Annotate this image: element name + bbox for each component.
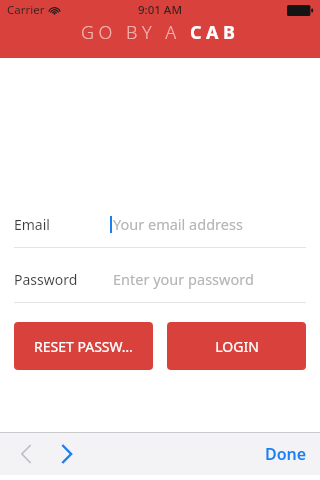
button[interactable]: Email [14,209,306,239]
button[interactable]: Previous field [6,434,46,474]
staticText: Email [14,215,50,234]
staticText: 9:01 AM [138,2,182,18]
button[interactable]: Next field [46,434,86,474]
button[interactable]: Password [14,264,306,294]
staticText: Done [265,443,307,465]
button[interactable]: LOGIN [167,322,306,370]
staticText: Password [14,270,78,289]
staticText: LOGIN [215,337,259,356]
staticText: CAB [190,20,240,45]
button[interactable]: RESET PASSW… [14,322,153,370]
staticText: Your email address [113,214,243,234]
button[interactable]: Done [260,437,312,471]
staticText: Enter your password [113,269,254,289]
staticText: GO BY A [81,20,190,45]
staticText: RESET PASSW… [34,337,133,356]
staticText: Carrier [7,2,45,18]
